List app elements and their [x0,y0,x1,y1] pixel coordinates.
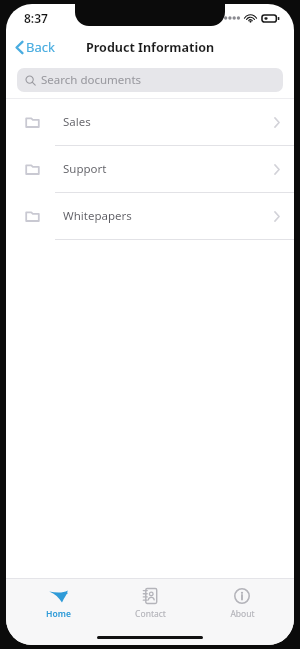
button[interactable]: Contact [110,585,190,622]
staticText: Product Information [86,39,215,56]
button[interactable]: Whitepapers [6,193,294,239]
staticText: About [230,608,255,620]
staticText: 8:37 [24,10,48,26]
staticText: Search documents [41,72,142,88]
staticText: Contact [135,608,166,620]
button[interactable]: About [202,585,282,622]
button[interactable]: Support [6,146,294,192]
button[interactable]: Back [6,34,65,60]
button[interactable]: Search documents [17,68,283,92]
staticText: Back [26,38,55,56]
staticText: Whitepapers [63,208,274,224]
button[interactable]: Sales [6,99,294,145]
staticText: Support [63,161,274,177]
staticText: Sales [63,114,274,130]
staticText: Home [46,608,71,620]
button[interactable]: Home [18,585,98,622]
